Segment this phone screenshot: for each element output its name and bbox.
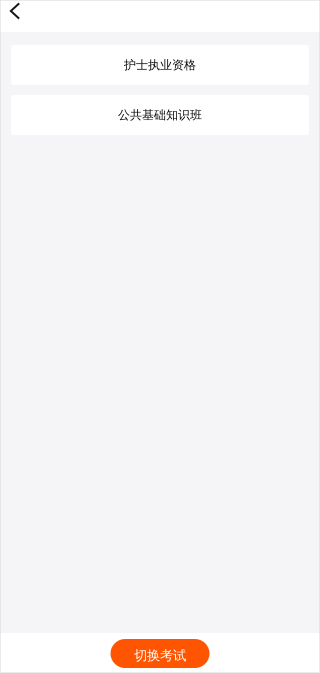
staticText: 护士执业资格	[124, 58, 196, 72]
staticText: 公共基础知识班	[118, 108, 202, 122]
staticText: 切换考试	[134, 647, 186, 664]
button[interactable]: 公共基础知识班	[11, 95, 309, 135]
button[interactable]: 护士执业资格	[11, 45, 309, 85]
button[interactable]: 切换考试	[110, 639, 209, 668]
button[interactable]: Back	[0, 0, 30, 32]
